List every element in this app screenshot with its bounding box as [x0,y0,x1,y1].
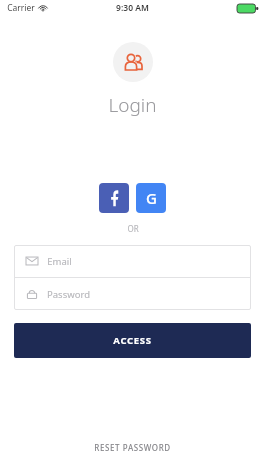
button[interactable]: RESET PASSWORD [0,430,265,465]
staticText: G [146,188,157,208]
staticText: Carrier [7,2,35,14]
button[interactable]: ACCESS [14,323,251,358]
button[interactable]: Password [14,278,251,310]
staticText: RESET PASSWORD [94,442,171,453]
staticText: ACCESS [113,334,152,347]
button[interactable]: Email [14,245,251,277]
button[interactable]: Sign in with Facebook [99,183,129,213]
button[interactable]: Sign in with Google [136,183,166,213]
staticText: 9:30 AM [116,2,149,14]
staticText: Email [47,255,72,268]
staticText: OR [127,223,139,234]
staticText: Login [108,92,157,118]
staticText: Password [47,288,90,301]
